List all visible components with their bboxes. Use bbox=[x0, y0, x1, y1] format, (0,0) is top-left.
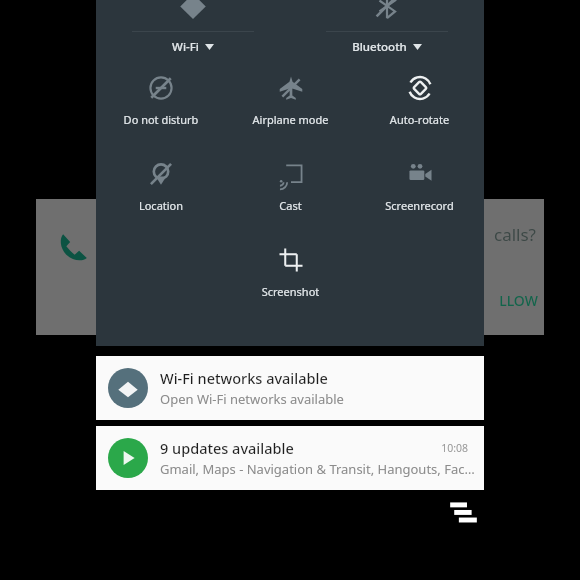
staticText: Airplane mode bbox=[226, 112, 355, 127]
button[interactable]: 9 updates available bbox=[96, 426, 484, 490]
staticText: calls? bbox=[494, 223, 536, 246]
button[interactable]: Wi-Fi bbox=[96, 0, 290, 62]
staticText: Gmail, Maps - Navigation & Transit, Hang… bbox=[160, 460, 478, 478]
staticText: Wi-Fi networks available bbox=[160, 368, 478, 388]
button[interactable]: Bluetooth bbox=[290, 0, 484, 62]
staticText: LLOW bbox=[499, 291, 538, 310]
staticText: Screenshot bbox=[226, 284, 355, 299]
staticText: Cast bbox=[226, 198, 355, 213]
button[interactable]: Screenrecord bbox=[355, 148, 484, 234]
button[interactable]: Screenshot bbox=[226, 234, 355, 320]
button[interactable]: Airplane mode bbox=[226, 62, 355, 148]
staticText: Open Wi-Fi networks available bbox=[160, 390, 478, 408]
button[interactable]: Do not disturb bbox=[96, 62, 226, 148]
staticText: Do not disturb bbox=[96, 112, 226, 127]
staticText: Bluetooth bbox=[352, 39, 407, 55]
button[interactable]: Notifications bbox=[449, 502, 478, 523]
button[interactable]: Wi-Fi networks available bbox=[96, 356, 484, 420]
staticText: Location bbox=[96, 198, 226, 213]
staticText: Wi-Fi bbox=[172, 39, 199, 55]
staticText: Screenrecord bbox=[355, 198, 484, 213]
staticText: Auto-rotate bbox=[355, 112, 484, 127]
button[interactable]: Cast bbox=[226, 148, 355, 234]
staticText: 9 updates available bbox=[160, 438, 441, 458]
staticText: 10:08 bbox=[441, 441, 468, 455]
button[interactable]: Auto-rotate bbox=[355, 62, 484, 148]
button[interactable]: Location bbox=[96, 148, 226, 234]
